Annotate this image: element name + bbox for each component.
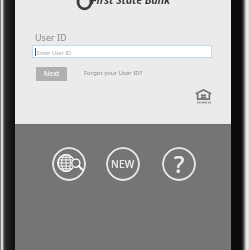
button[interactable]: Help [162,147,196,181]
staticText: ? [174,148,185,179]
staticText: Enter User ID [37,49,71,56]
button[interactable]: Forgot your User ID? [84,69,143,77]
button[interactable]: Next [36,67,67,81]
staticText: User ID [35,31,67,43]
staticText: Next [44,69,60,79]
staticText: Forgot your User ID? [84,69,143,77]
button[interactable]: Search site [52,147,86,181]
button[interactable]: Enter User ID [32,45,212,58]
button[interactable]: What's new [106,147,140,181]
staticText: First State Bank [91,0,170,7]
staticText: NEW [111,157,135,171]
